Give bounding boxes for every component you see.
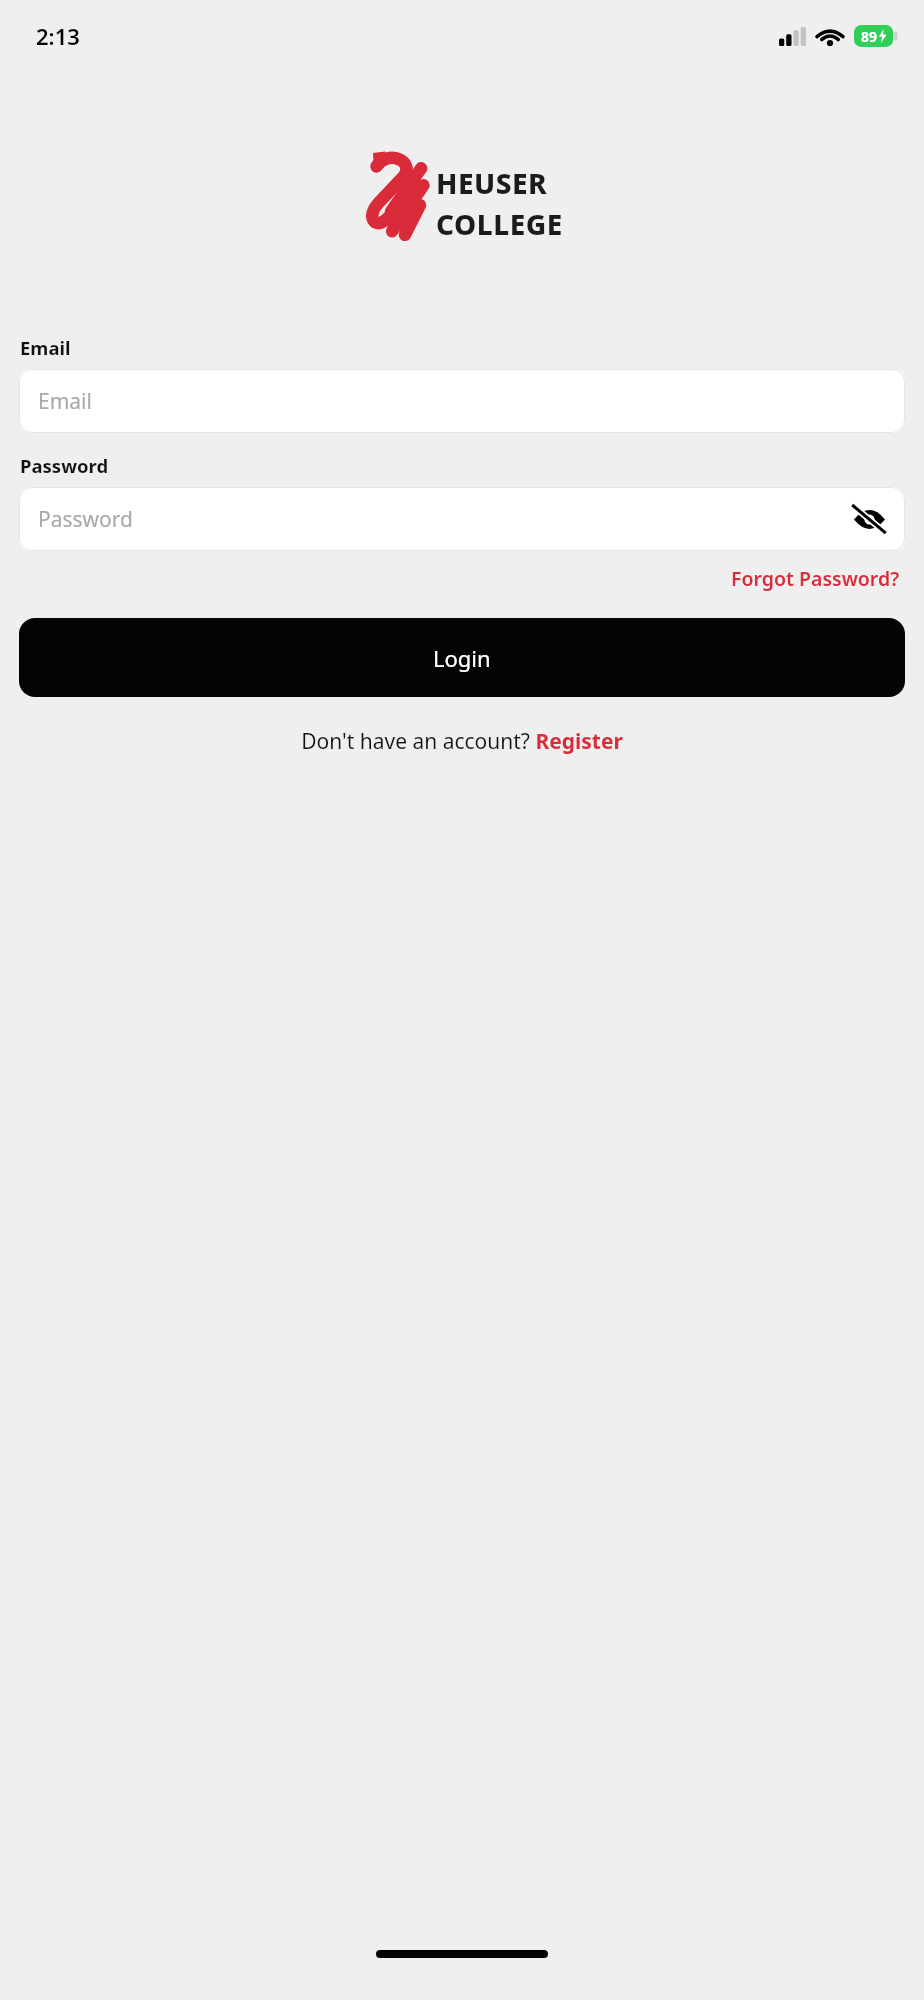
staticText: COLLEGE (436, 205, 563, 243)
staticText: 89 (861, 27, 878, 46)
staticText: Email (38, 387, 92, 416)
staticText: Forgot Password? (731, 565, 900, 592)
staticText: Password (38, 505, 133, 534)
button[interactable]: Show password (847, 497, 891, 541)
staticText: HEUSER (436, 164, 548, 202)
staticText: Login (433, 643, 491, 673)
staticText: Don't have an account? Register (301, 727, 623, 756)
button[interactable]: Email (19, 369, 905, 433)
button[interactable]: Forgot Password? (726, 562, 905, 595)
button[interactable]: Don't have an account? Register (296, 724, 628, 759)
button[interactable]: Login (19, 618, 905, 697)
staticText: Email (20, 335, 71, 360)
button[interactable]: Password (19, 487, 905, 551)
staticText: 2:13 (36, 21, 80, 51)
staticText: Password (20, 453, 109, 478)
